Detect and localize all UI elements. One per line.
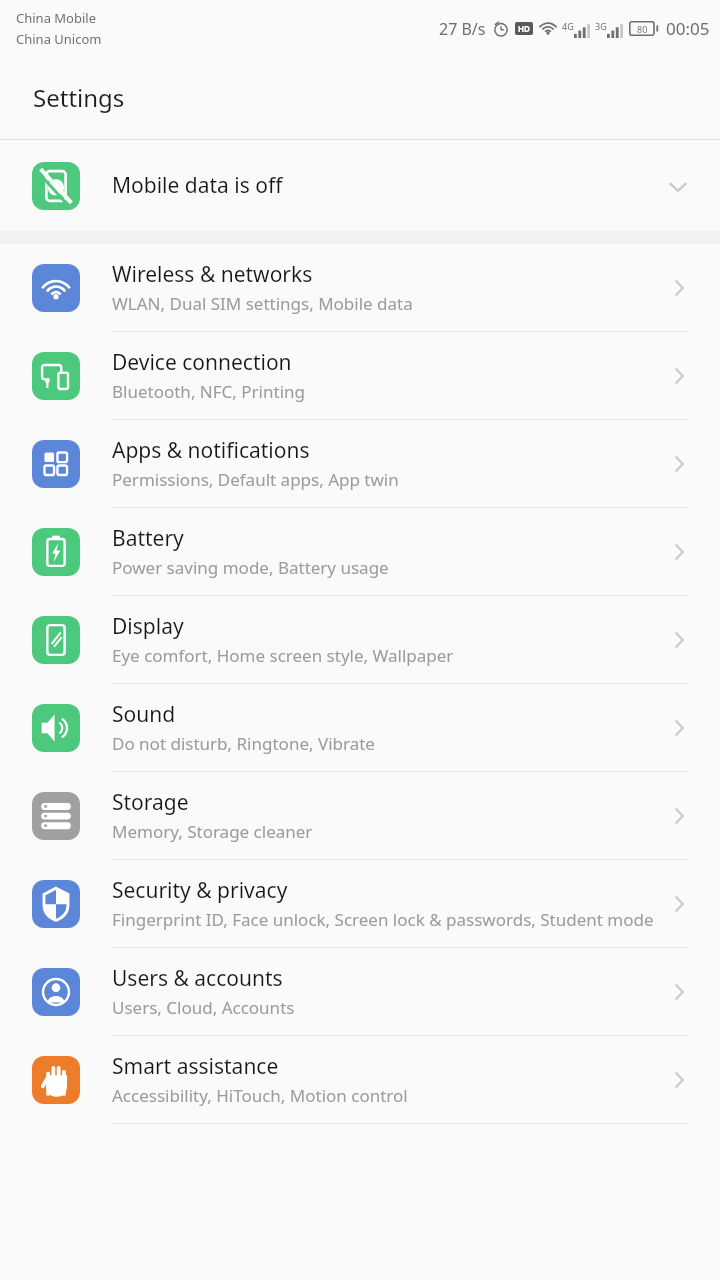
staticText: 80 (637, 23, 648, 35)
button[interactable]: Device connection (0, 332, 720, 419)
staticText: Accessibility, HiTouch, Motion control (112, 1084, 408, 1107)
staticText: Device connection (112, 348, 292, 377)
staticText: Mobile data is off (112, 171, 283, 200)
staticText: Battery (112, 524, 184, 553)
staticText: Users, Cloud, Accounts (112, 996, 295, 1019)
button[interactable]: Users & accounts (0, 948, 720, 1035)
staticText: 27 B/s (439, 18, 486, 40)
staticText: Apps & notifications (112, 436, 310, 465)
staticText: China Unicom (16, 30, 102, 48)
button[interactable]: Battery (0, 508, 720, 595)
other: Expand mobile data (664, 172, 692, 200)
button[interactable]: Mobile data is off (0, 140, 720, 231)
staticText: Security & privacy (112, 876, 288, 905)
button[interactable]: Smart assistance (0, 1036, 720, 1123)
staticText: 00:05 (666, 17, 710, 40)
button[interactable]: Sound (0, 684, 720, 771)
staticText: HD (518, 23, 530, 34)
staticText: Power saving mode, Battery usage (112, 556, 389, 579)
button[interactable]: Storage (0, 772, 720, 859)
staticText: Eye comfort, Home screen style, Wallpape… (112, 644, 454, 667)
staticText: Smart assistance (112, 1052, 279, 1081)
button[interactable]: Wireless & networks (0, 244, 720, 331)
button[interactable]: Apps & notifications (0, 420, 720, 507)
staticText: Do not disturb, Ringtone, Vibrate (112, 732, 375, 755)
staticText: Permissions, Default apps, App twin (112, 468, 399, 491)
staticText: Display (112, 612, 184, 641)
button[interactable]: Security & privacy (0, 860, 720, 947)
staticText: Users & accounts (112, 964, 283, 993)
staticText: Settings (33, 81, 125, 114)
staticText: Wireless & networks (112, 260, 313, 289)
button[interactable]: Display (0, 596, 720, 683)
staticText: Bluetooth, NFC, Printing (112, 380, 306, 403)
staticText: Sound (112, 700, 176, 729)
staticText: Memory, Storage cleaner (112, 820, 313, 843)
staticText: 4G (562, 20, 574, 32)
staticText: Fingerprint ID, Face unlock, Screen lock… (112, 908, 654, 931)
staticText: China Mobile (16, 9, 97, 27)
staticText: Storage (112, 788, 189, 817)
staticText: WLAN, Dual SIM settings, Mobile data (112, 292, 413, 315)
staticText: 3G (595, 20, 607, 32)
